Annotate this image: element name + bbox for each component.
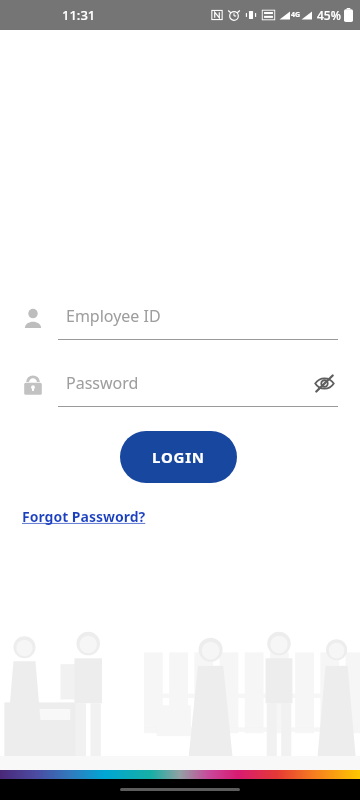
button[interactable]: Employee xyxy=(22,296,338,340)
button[interactable]: Forgot Password? xyxy=(22,505,146,528)
staticText: 45% xyxy=(317,7,341,23)
staticText: LOGIN xyxy=(152,447,205,467)
button[interactable]: LOGIN xyxy=(120,431,237,483)
button[interactable]: Show password xyxy=(310,369,338,397)
button[interactable]: Password xyxy=(22,363,338,407)
staticText: 11:31 xyxy=(62,6,96,24)
staticText: Forgot Password? xyxy=(22,507,146,526)
staticText: 4G xyxy=(291,10,301,20)
other: Employee xyxy=(22,307,44,329)
other: Password xyxy=(22,374,44,396)
staticText: Password xyxy=(66,372,139,394)
staticText: Employee ID xyxy=(66,305,161,327)
